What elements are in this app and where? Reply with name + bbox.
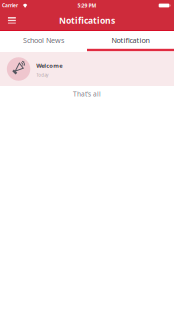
staticText: That's all [73,90,101,98]
button[interactable]: Notification [87,32,174,49]
staticText: 5:29 PM [77,2,96,9]
staticText: Today [36,72,48,78]
button[interactable]: Menu [4,11,20,30]
button[interactable]: Welcome [0,52,174,86]
staticText: Carrier [2,2,18,9]
staticText: Welcome [36,62,62,69]
button[interactable]: School News [0,32,87,49]
staticText: Notifications [59,15,115,26]
staticText: Notification [111,35,149,45]
staticText: School News [23,35,64,45]
